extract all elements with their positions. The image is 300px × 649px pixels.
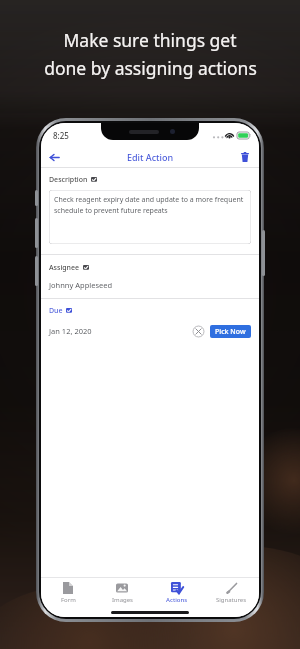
staticText: Check reagent expiry date and update to … [54, 195, 246, 215]
button[interactable]: Clear due date [192, 325, 205, 338]
staticText: Make sure things get [63, 28, 237, 52]
staticText: Jan 12, 2020 [49, 326, 92, 336]
button[interactable]: Images [95, 578, 149, 608]
staticText: Signatures [216, 596, 247, 604]
staticText: done by assigning actions [44, 56, 257, 80]
button[interactable]: Pick Now [210, 325, 251, 338]
button[interactable]: Signatures [204, 578, 259, 608]
staticText: Johnny Appleseed [49, 280, 113, 290]
staticText: Assignee [49, 263, 80, 273]
staticText: Actions [166, 596, 188, 604]
button[interactable]: Check reagent expiry date and update to … [49, 190, 251, 244]
staticText: Images [112, 596, 133, 604]
staticText: Edit Action [127, 151, 174, 163]
staticText: Form [61, 596, 76, 604]
staticText: 8:25 [53, 130, 69, 141]
button[interactable]: Form [41, 578, 95, 608]
staticText: Pick Now [215, 327, 246, 337]
button[interactable]: Actions [149, 578, 204, 608]
staticText: Description [49, 175, 88, 185]
button[interactable]: Back [45, 148, 63, 166]
button[interactable]: Delete [236, 148, 254, 166]
staticText: Due [49, 306, 63, 316]
